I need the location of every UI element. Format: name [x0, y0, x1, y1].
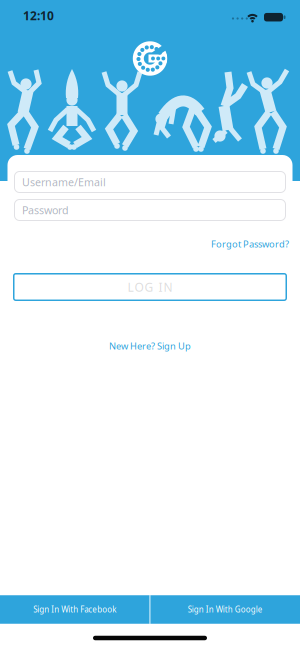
staticText: Sign In With Google: [188, 604, 263, 615]
secureTextField[interactable]: Password: [22, 203, 286, 217]
button[interactable]: New Here? Sign Up: [109, 340, 191, 352]
button[interactable]: Sign In With Facebook: [0, 595, 149, 624]
staticText: Sign In With Facebook: [33, 604, 116, 615]
staticText: Password: [22, 203, 69, 217]
staticText: 12:10: [23, 7, 54, 23]
button[interactable]: Sign In With Google: [150, 595, 300, 624]
button[interactable]: Forgot Password?: [211, 238, 289, 250]
staticText: LOG IN: [127, 279, 172, 295]
button[interactable]: LOG IN: [13, 273, 287, 301]
textField[interactable]: Username/Email: [22, 175, 286, 189]
staticText: Username/Email: [22, 175, 106, 189]
staticText: Forgot Password?: [211, 238, 289, 250]
staticText: New Here? Sign Up: [109, 340, 191, 352]
